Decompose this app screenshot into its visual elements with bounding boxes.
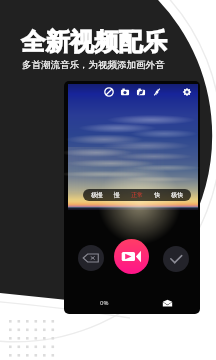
button[interactable]: Messages bbox=[161, 297, 174, 310]
staticText: 快 bbox=[154, 191, 160, 199]
button[interactable]: Switch camera bbox=[134, 85, 148, 99]
staticText: 全新视频配乐 bbox=[21, 27, 168, 57]
staticText: 正常 bbox=[131, 191, 143, 199]
button[interactable]: Flash off bbox=[150, 85, 164, 99]
staticText: 0% bbox=[100, 299, 109, 307]
button[interactable]: 慢 bbox=[107, 191, 127, 199]
button[interactable]: No filter bbox=[102, 85, 116, 99]
button[interactable]: Record bbox=[114, 239, 149, 274]
button[interactable]: 极快 bbox=[167, 191, 187, 199]
staticText: 极快 bbox=[171, 191, 183, 199]
button[interactable]: Camera bbox=[118, 85, 132, 99]
button[interactable]: Settings bbox=[180, 85, 194, 99]
button[interactable]: 快 bbox=[147, 191, 167, 199]
staticText: 多首潮流音乐，为视频添加画外音 bbox=[22, 59, 165, 71]
staticText: 极慢 bbox=[91, 191, 103, 199]
staticText: 慢 bbox=[114, 191, 120, 199]
button[interactable]: 极慢 bbox=[87, 191, 107, 199]
button[interactable]: Delete bbox=[78, 245, 104, 271]
button[interactable]: Confirm bbox=[163, 246, 189, 272]
button[interactable]: 正常 bbox=[127, 191, 147, 199]
